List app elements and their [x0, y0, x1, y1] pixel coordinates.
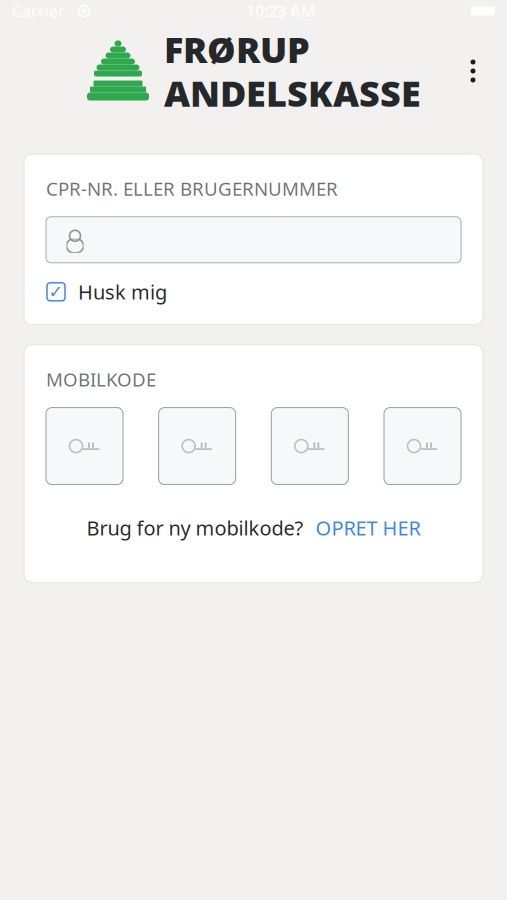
button[interactable]: Mobilkode ciffer — [384, 408, 461, 485]
staticText: ANDELSKASSE — [164, 69, 421, 117]
button[interactable]: Menu — [451, 49, 495, 93]
button[interactable]: ✓ — [46, 277, 461, 307]
staticText: FRØRUP — [164, 25, 310, 73]
staticText: OPRET HER — [315, 514, 420, 541]
button[interactable]: Mobilkode ciffer — [46, 408, 123, 485]
staticText: Husk mig — [78, 278, 167, 305]
button[interactable]: Mobilkode ciffer — [271, 408, 348, 485]
staticText: MOBILKODE — [46, 367, 156, 392]
staticText: Brug for ny mobilkode? — [86, 514, 303, 541]
staticText: ✓ — [48, 282, 63, 302]
staticText: Carrier — [12, 0, 65, 22]
button[interactable]: OPRET HER — [315, 514, 420, 541]
button[interactable]: Mobilkode ciffer — [159, 408, 236, 485]
button[interactable] — [46, 217, 461, 263]
staticText: CPR-NR. ELLER BRUGERNUMMER — [46, 176, 338, 201]
staticText: 10:23 AM — [246, 0, 316, 22]
